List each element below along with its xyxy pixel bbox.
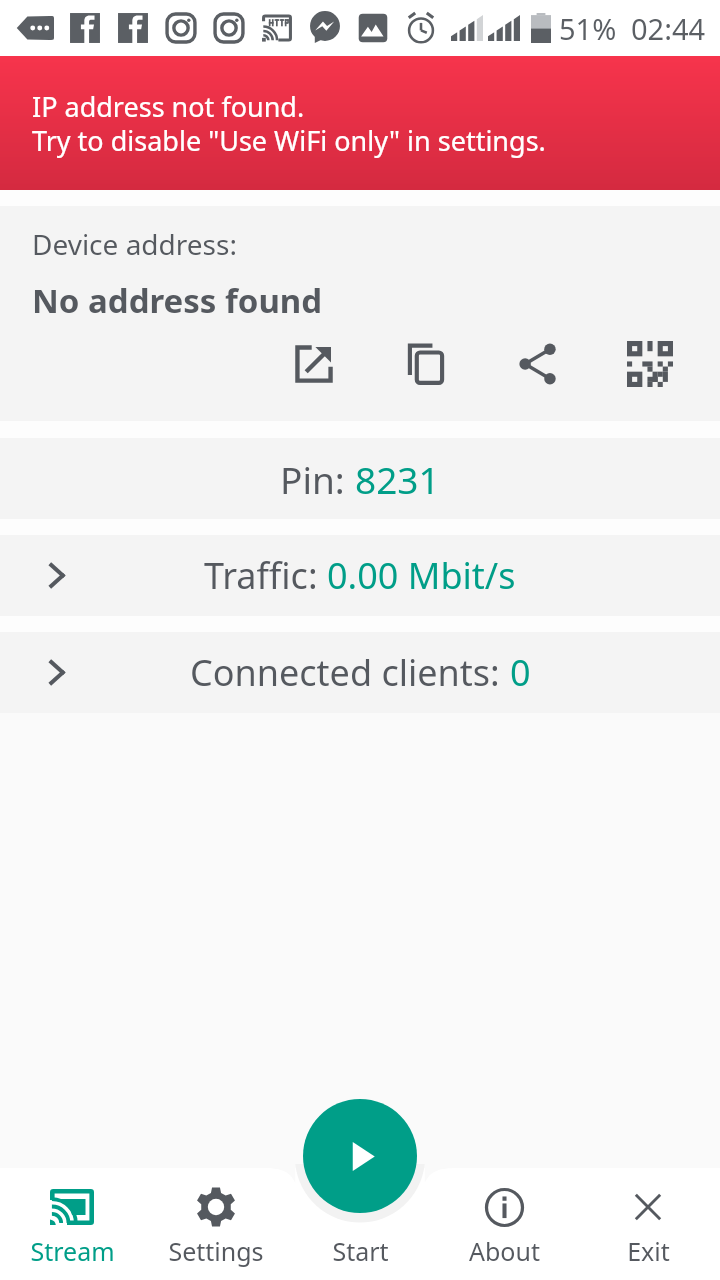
- button[interactable]: Pin:: [0, 438, 720, 519]
- staticText: Stream: [30, 1234, 115, 1268]
- staticText: No address found: [32, 278, 323, 323]
- button[interactable]: About: [432, 1168, 576, 1280]
- staticText: Connected clients:: [190, 648, 510, 697]
- button[interactable]: Open in browser: [283, 333, 345, 395]
- staticText: 02:44: [631, 9, 706, 48]
- staticText: Exit: [627, 1234, 670, 1268]
- staticText: Settings: [168, 1234, 264, 1268]
- staticText: Device address:: [32, 225, 237, 263]
- button[interactable]: Show QR code: [619, 333, 681, 395]
- staticText: 0: [510, 648, 531, 697]
- button[interactable]: Stream: [0, 1168, 144, 1280]
- button[interactable]: Start streaming: [303, 1099, 417, 1213]
- button[interactable]: Traffic:: [0, 535, 720, 616]
- button[interactable]: Copy: [395, 333, 457, 395]
- button[interactable]: Start: [288, 1168, 432, 1280]
- staticText: IP address not found.: [32, 88, 305, 125]
- button[interactable]: Exit: [576, 1168, 720, 1280]
- staticText: 0.00 Mbit/s: [327, 551, 516, 600]
- button[interactable]: Share: [507, 333, 569, 395]
- button[interactable]: IP address not found.: [0, 56, 720, 190]
- staticText: Traffic:: [204, 551, 327, 600]
- button[interactable]: Settings: [144, 1168, 288, 1280]
- staticText: Try to disable "Use WiFi only" in settin…: [32, 122, 546, 159]
- staticText: About: [469, 1234, 540, 1268]
- button[interactable]: Connected clients:: [0, 632, 720, 713]
- staticText: Start: [332, 1234, 389, 1268]
- staticText: Pin:: [280, 454, 355, 504]
- staticText: 8231: [355, 454, 440, 504]
- staticText: 51%: [559, 9, 617, 48]
